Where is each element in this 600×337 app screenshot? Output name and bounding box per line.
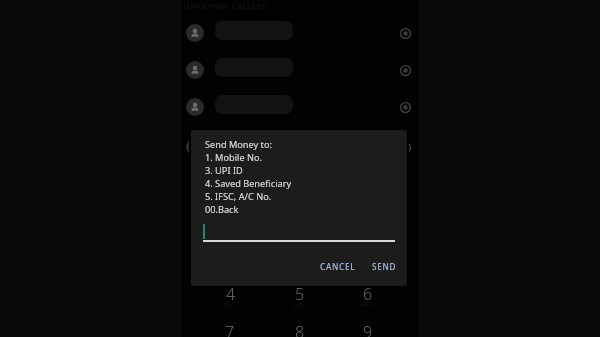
staticText: 5. IFSC, A/C No. xyxy=(205,190,272,203)
button[interactable]: 4 xyxy=(207,283,253,317)
button[interactable]: 8 xyxy=(276,321,322,337)
staticText: JKL xyxy=(294,301,305,308)
staticText: 9 xyxy=(363,321,373,337)
staticText: Send Money to: xyxy=(205,138,272,151)
button[interactable]: 7 xyxy=(207,321,253,337)
button[interactable]: 5 xyxy=(276,283,322,317)
button[interactable]: Call details xyxy=(181,15,419,51)
button[interactable]: Call details xyxy=(392,94,418,120)
staticText: 6 xyxy=(363,283,373,305)
button[interactable]: Call details xyxy=(181,89,419,125)
staticText: 5 xyxy=(295,283,305,305)
button[interactable]: Call details xyxy=(392,57,418,83)
button[interactable]: Call details xyxy=(392,20,418,46)
staticText: CANCEL xyxy=(320,261,356,272)
staticText: 7 xyxy=(225,321,235,337)
staticText: 3. UPI ID xyxy=(205,164,243,177)
button[interactable]: 9 xyxy=(345,321,391,337)
staticText: 4. Saved Beneficiary xyxy=(205,177,292,190)
staticText: UNKNOWN CALLERS xyxy=(184,1,267,11)
staticText: 4 xyxy=(226,283,236,305)
button[interactable]: Call details xyxy=(181,52,419,88)
button[interactable]: CANCEL xyxy=(313,256,363,277)
staticText: 8 xyxy=(295,321,305,337)
staticText: GHI xyxy=(224,301,237,308)
button[interactable]: SEND xyxy=(365,256,404,277)
staticText: 1. Mobile No. xyxy=(205,151,262,164)
button[interactable]: Call details xyxy=(392,134,418,160)
button[interactable]: Call details xyxy=(181,129,419,165)
button[interactable]: 6 xyxy=(345,283,391,317)
staticText: 00.Back xyxy=(205,203,239,216)
staticText: SEND xyxy=(372,261,397,272)
staticText: MNO xyxy=(360,301,376,308)
